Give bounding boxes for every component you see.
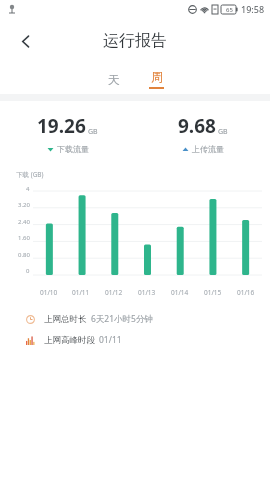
staticText: 下载 (GB) — [16, 170, 44, 179]
button[interactable]: Back — [10, 25, 42, 57]
staticText: 9.68 — [178, 113, 216, 139]
staticText: 周 — [151, 69, 163, 84]
staticText: 01/15 — [204, 288, 222, 297]
staticText: 1.60 — [18, 234, 30, 242]
staticText: 天 — [108, 72, 120, 87]
staticText: 3.20 — [18, 201, 30, 209]
button[interactable]: 天 — [93, 64, 135, 94]
staticText: 01/14 — [171, 288, 189, 297]
staticText: 4 — [26, 185, 30, 193]
staticText: 19.26 — [37, 113, 86, 139]
staticText: 01/11 — [99, 334, 122, 346]
staticText: 01/13 — [138, 288, 156, 297]
staticText: 0 — [26, 267, 30, 275]
staticText: 01/11 — [72, 288, 90, 297]
staticText: 01/10 — [40, 288, 58, 297]
staticText: GB — [88, 127, 98, 137]
staticText: 19:58 — [241, 3, 265, 15]
staticText: 上网总时长 — [44, 314, 87, 325]
staticText: 01/12 — [105, 288, 123, 297]
button[interactable]: 周 — [135, 64, 177, 94]
staticText: 2.40 — [18, 218, 30, 226]
staticText: 0.80 — [18, 251, 30, 259]
staticText: 65 — [226, 6, 233, 14]
staticText: 运行报告 — [103, 31, 167, 51]
staticText: 01/16 — [237, 288, 255, 297]
staticText: 上传流量 — [192, 144, 224, 154]
staticText: 下载流量 — [57, 144, 89, 154]
staticText: 上网高峰时段 — [44, 335, 95, 346]
staticText: GB — [218, 127, 228, 137]
staticText: 6天21小时5分钟 — [91, 313, 153, 325]
